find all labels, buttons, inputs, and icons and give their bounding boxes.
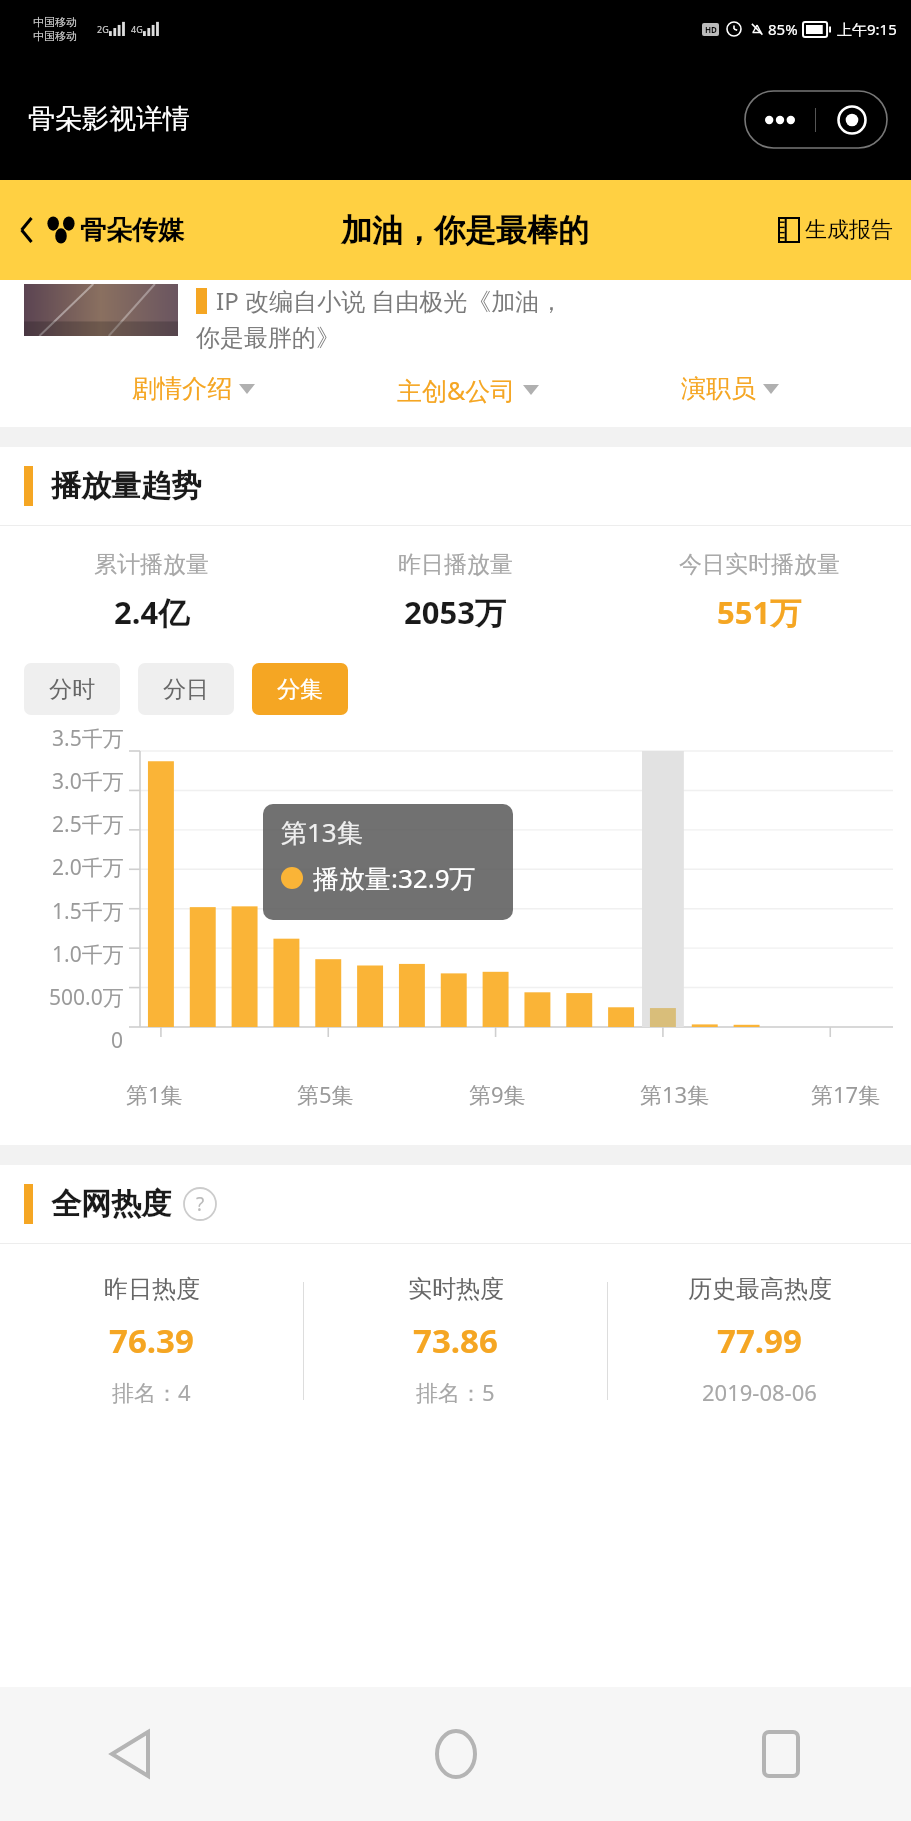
- staticText: 播放量趋势: [51, 467, 201, 505]
- staticText: 4G: [131, 23, 143, 35]
- staticText: 全网热度: [51, 1185, 171, 1223]
- button[interactable]: Close: [816, 91, 887, 148]
- button[interactable]: Home: [416, 1714, 496, 1794]
- staticText: 1.0千万: [52, 940, 124, 969]
- staticText: 73.86: [413, 1318, 498, 1363]
- staticText: 上午9:15: [837, 19, 897, 39]
- button[interactable]: 分时: [24, 663, 120, 715]
- button[interactable]: Back: [12, 210, 42, 250]
- staticText: 骨朵影视详情: [28, 102, 190, 136]
- button[interactable]: Help: [183, 1187, 217, 1221]
- staticText: 分集: [277, 675, 323, 704]
- staticText: 昨日热度: [104, 1274, 200, 1304]
- staticText: 你是最胖的》: [196, 323, 340, 353]
- staticText: 排名：4: [112, 1377, 191, 1407]
- staticText: 演职员: [681, 373, 756, 404]
- staticText: 实时热度: [408, 1274, 504, 1304]
- button[interactable]: Recents: [741, 1714, 821, 1794]
- staticText: 85%: [768, 19, 798, 39]
- button[interactable]: More: [745, 91, 815, 148]
- staticText: 第17集: [811, 1079, 881, 1109]
- button[interactable]: 主创&公司: [387, 369, 549, 411]
- staticText: 500.0万: [49, 983, 124, 1012]
- staticText: 剧情介绍: [132, 373, 232, 404]
- staticText: 播放量:32.9万: [313, 860, 476, 896]
- button[interactable]: Back: [90, 1714, 170, 1794]
- staticText: 中国移动: [33, 29, 77, 43]
- staticText: IP 改编自小说 自由极光《加油，: [216, 284, 564, 317]
- staticText: 2053万: [404, 591, 506, 633]
- staticText: 76.39: [109, 1318, 194, 1363]
- staticText: 加油，你是最棒的: [341, 211, 589, 250]
- button[interactable]: 演职员: [671, 369, 789, 408]
- staticText: 2.0千万: [52, 853, 124, 882]
- staticText: 昨日播放量: [398, 550, 513, 579]
- staticText: HD: [705, 24, 717, 35]
- button[interactable]: 生成报告: [778, 216, 893, 244]
- staticText: 分日: [163, 675, 209, 704]
- staticText: 分时: [49, 675, 95, 704]
- staticText: ?: [196, 1191, 205, 1217]
- staticText: 第13集: [281, 814, 363, 850]
- staticText: 1.5千万: [52, 897, 124, 926]
- staticText: 第9集: [469, 1079, 526, 1109]
- staticText: 主创&公司: [397, 373, 516, 407]
- staticText: 第13集: [640, 1079, 710, 1109]
- staticText: 551万: [717, 591, 802, 633]
- button[interactable]: 分日: [138, 663, 234, 715]
- staticText: 3.0千万: [52, 767, 124, 796]
- staticText: 骨朵传媒: [80, 214, 184, 247]
- staticText: 第1集: [126, 1079, 183, 1109]
- staticText: 中国移动: [33, 15, 77, 29]
- staticText: 2G: [97, 23, 109, 35]
- staticText: 0: [111, 1026, 124, 1055]
- staticText: 2.5千万: [52, 810, 124, 839]
- staticText: 今日实时播放量: [679, 550, 840, 579]
- button[interactable]: 剧情介绍: [122, 369, 265, 408]
- staticText: 第5集: [297, 1079, 354, 1109]
- staticText: 排名：5: [416, 1377, 495, 1407]
- staticText: 3.5千万: [52, 724, 124, 753]
- button[interactable]: 分集: [252, 663, 348, 715]
- staticText: 77.99: [717, 1318, 802, 1363]
- staticText: 2.4亿: [114, 591, 190, 633]
- staticText: 累计播放量: [94, 550, 209, 579]
- staticText: 历史最高热度: [688, 1274, 832, 1304]
- staticText: 生成报告: [805, 216, 893, 244]
- staticText: 2019-08-06: [702, 1377, 817, 1407]
